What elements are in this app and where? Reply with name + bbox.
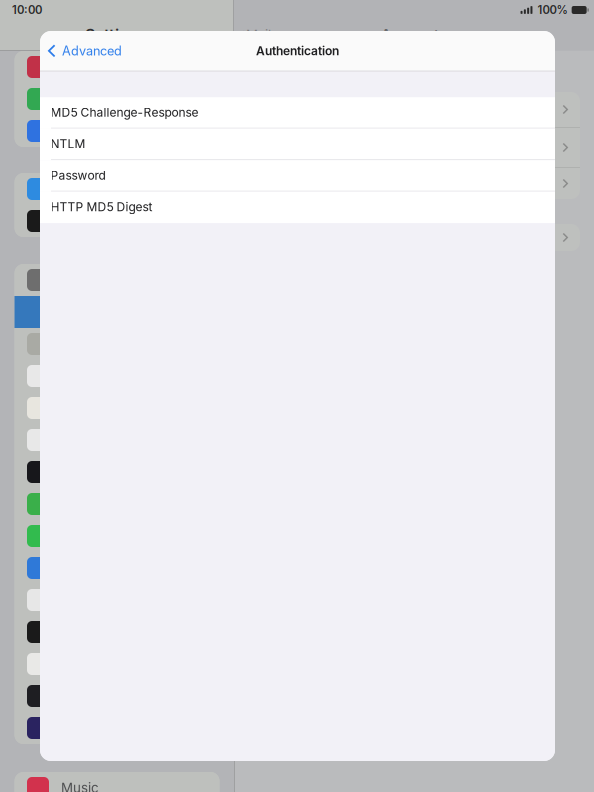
staticText: Authentication [256,44,339,58]
staticText: MD5 Challenge-Response [51,105,199,120]
staticText: App Store [61,181,124,197]
button[interactable]: Reminders [14,424,219,456]
button[interactable]: Translate [14,680,219,712]
button[interactable]: FaceTime [14,520,219,552]
staticText: HTTP MD5 Digest [51,200,153,214]
button[interactable]: Mail [14,296,219,328]
staticText: 10:00 [12,3,42,17]
button[interactable]: News [14,584,219,616]
staticText: Touch ID & Passcode [61,59,198,75]
staticText: Mail [246,27,271,43]
button[interactable]: Battery [14,83,219,115]
staticText: Privacy & Security [61,123,176,139]
button[interactable]: NTLM [40,129,555,160]
button[interactable]: Safari [14,552,219,584]
staticText: Wallet & Apple Pay [61,213,178,229]
button[interactable]: Wallet & Apple Pay [14,205,219,237]
button[interactable]: Maps [14,648,219,680]
button[interactable]: Voice Memos [14,456,219,488]
staticText: NTLM [51,137,86,151]
staticText: Advanced [62,43,122,58]
button[interactable]: HTTP MD5 Digest [40,192,555,223]
button[interactable]: Messages [14,488,219,520]
button[interactable]: App Store [14,173,219,205]
button[interactable]: Touch ID & Passcode [14,51,219,83]
button[interactable]: Passwords [14,264,219,296]
staticText: Password [51,168,106,183]
button[interactable]: Stocks [14,616,219,648]
staticText: 100% [537,3,567,17]
staticText: Battery [61,91,105,107]
button[interactable]: Music [14,772,219,792]
button[interactable]: Photos [14,712,219,744]
button[interactable]: Notes [14,392,219,424]
button[interactable]: MD5 Challenge-Response [40,97,555,129]
staticText: Settings [85,25,148,45]
button[interactable]: Calendar [14,360,219,392]
button[interactable]: Contacts [14,328,219,360]
button[interactable]: Password [40,160,555,192]
staticText: Music [61,780,99,792]
button[interactable]: Advanced [40,31,130,71]
staticText: Accounts [381,26,447,43]
button[interactable]: Privacy & Security [14,115,219,147]
